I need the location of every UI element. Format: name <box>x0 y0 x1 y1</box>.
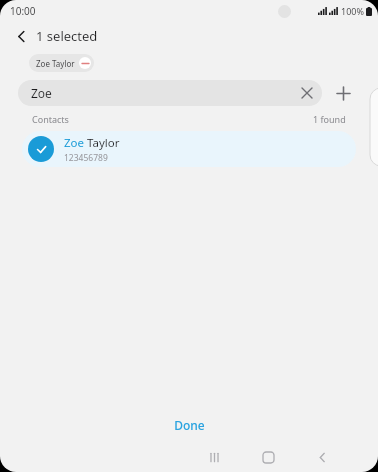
staticText: 10:00 <box>10 4 36 18</box>
button[interactable]: Recent apps <box>196 442 232 472</box>
button[interactable]: Home <box>250 442 286 472</box>
staticText: Zoe <box>31 85 52 101</box>
button[interactable]: Zoe <box>18 80 322 106</box>
staticText: 123456789 <box>64 152 108 164</box>
button[interactable]: Zoe Taylor <box>29 54 94 72</box>
button[interactable]: Done <box>158 412 221 438</box>
button[interactable]: Back <box>8 23 34 49</box>
button[interactable]: Add recipient <box>330 80 356 106</box>
staticText: Contacts <box>32 113 69 125</box>
staticText: Done <box>174 417 205 433</box>
staticText: 1 selected <box>36 27 98 45</box>
staticText: 1 found <box>313 113 346 125</box>
button[interactable]: Clear search <box>295 81 319 105</box>
button[interactable]: Back <box>304 442 340 472</box>
staticText: Zoe Taylor <box>36 58 75 69</box>
staticText: 100% <box>341 5 364 17</box>
staticText: Zoe Taylor <box>64 135 120 151</box>
button[interactable]: Zoe Taylor <box>22 131 356 167</box>
